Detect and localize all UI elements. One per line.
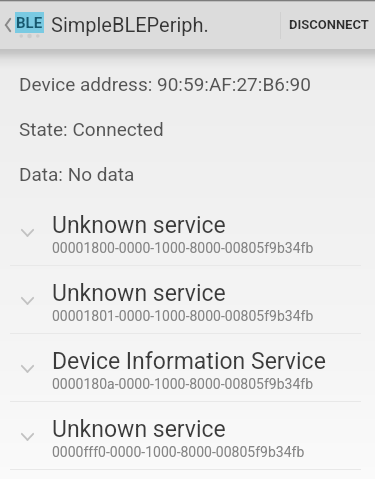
button[interactable]: Back xyxy=(0,0,209,49)
staticText: BLE xyxy=(16,14,43,32)
staticText: Device Information Service xyxy=(52,348,326,375)
staticText: 00001801-0000-1000-8000-00805f9b34fb xyxy=(52,308,314,324)
other: Back xyxy=(0,0,15,49)
staticText: State: Connected xyxy=(19,118,164,140)
staticText: 0000fff0-0000-1000-8000-00805f9b34fb xyxy=(52,444,305,460)
staticText: 0000180a-0000-1000-8000-00805f9b34fb xyxy=(52,376,313,392)
staticText: SimpleBLEPeriph. xyxy=(51,13,209,36)
button[interactable]: Unknown service xyxy=(0,198,375,266)
staticText: DISCONNECT xyxy=(289,17,369,32)
staticText: 00001800-0000-1000-8000-00805f9b34fb xyxy=(52,240,314,256)
button[interactable]: DISCONNECT xyxy=(280,0,375,49)
button[interactable]: Unknown service xyxy=(0,402,375,470)
staticText: Device address: 90:59:AF:27:B6:90 xyxy=(19,73,311,95)
staticText: Unknown service xyxy=(52,280,226,307)
button[interactable]: Device Information Service xyxy=(0,334,375,402)
staticText: Unknown service xyxy=(52,212,226,239)
button[interactable]: Unknown service xyxy=(0,266,375,334)
staticText: Data: No data xyxy=(19,163,135,185)
staticText: Unknown service xyxy=(52,416,226,443)
